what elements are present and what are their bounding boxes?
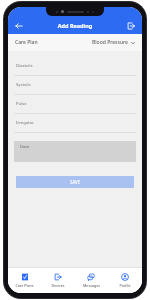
button[interactable]: Messages xyxy=(74,268,108,293)
staticText: Add Reading xyxy=(30,22,120,29)
button[interactable]: Profile xyxy=(108,268,142,293)
staticText: Care Plan xyxy=(15,39,38,46)
button[interactable]: Pulse xyxy=(8,95,142,114)
staticText: SAVE xyxy=(70,179,81,185)
staticText: Diastolic xyxy=(16,63,33,69)
button[interactable]: Diastolic xyxy=(8,57,142,76)
staticText: Profile xyxy=(119,283,131,288)
staticText: Date xyxy=(20,144,30,150)
button[interactable]: SAVE xyxy=(16,176,134,188)
staticText: Devices xyxy=(51,283,65,288)
staticText: Blood Pressure xyxy=(92,39,128,46)
staticText: Messages xyxy=(83,283,100,288)
button[interactable]: Date xyxy=(14,141,136,162)
staticText: Care Plans xyxy=(15,283,34,288)
button[interactable]: Irregular xyxy=(8,114,142,133)
button[interactable]: Devices xyxy=(41,268,74,293)
staticText: Pulse xyxy=(16,101,27,107)
button[interactable]: Care Plan xyxy=(8,34,142,51)
button[interactable]: Systolic xyxy=(8,76,142,95)
staticText: Systolic xyxy=(16,82,31,88)
staticText: Irregular xyxy=(16,120,34,126)
button[interactable]: Logout xyxy=(120,17,142,34)
button[interactable]: Care Plans xyxy=(8,268,41,293)
button[interactable]: Back xyxy=(8,17,30,34)
